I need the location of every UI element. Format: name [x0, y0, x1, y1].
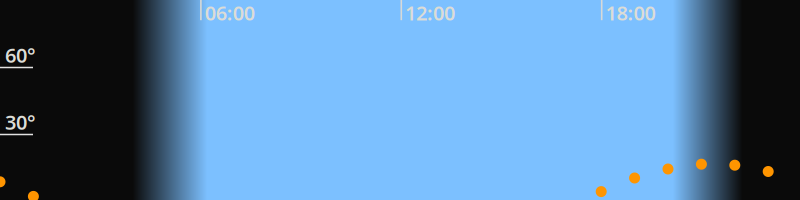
- staticText: 06:00: [205, 0, 255, 26]
- staticText: 18:00: [605, 0, 655, 26]
- staticText: 12:00: [405, 0, 455, 26]
- staticText: 30°: [5, 109, 36, 135]
- staticText: 60°: [5, 42, 36, 68]
